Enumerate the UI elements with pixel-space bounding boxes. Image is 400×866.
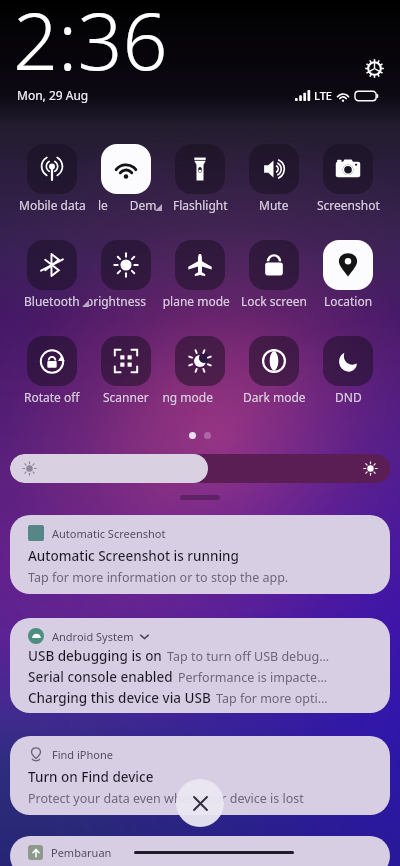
button[interactable]: Find iPhone	[10, 736, 390, 815]
staticText: Dark mode	[243, 389, 306, 405]
staticText: Mobile data	[19, 197, 86, 213]
staticText: Auto brightness	[89, 293, 147, 309]
button[interactable]: Bluetooth	[15, 240, 89, 312]
staticText: Rotate off	[24, 389, 80, 405]
staticText: Bluetooth	[24, 293, 80, 309]
button[interactable]: Reading mode	[163, 336, 237, 408]
staticText: Android System	[52, 629, 134, 644]
button[interactable]: Mute	[237, 144, 311, 216]
staticText: Reading mode	[163, 389, 213, 405]
button[interactable]: Brightness	[10, 454, 390, 483]
staticText: Serial console enabled	[28, 668, 173, 686]
staticText: Tap to turn off USB debug…	[167, 648, 330, 665]
button[interactable]: Settings	[360, 54, 388, 82]
staticText: Airplane mode	[163, 293, 230, 309]
staticText: LTE	[314, 88, 332, 103]
button[interactable]: Lock screen	[237, 240, 311, 312]
button[interactable]: Rotate off	[15, 336, 89, 408]
button[interactable]: Automatic Screenshot	[10, 515, 390, 594]
staticText: Tap for more opti…	[216, 690, 328, 707]
button[interactable]: Mobile data	[15, 144, 89, 216]
staticText: Charging this device via USB	[28, 689, 211, 707]
button[interactable]: Auto brightness	[89, 240, 163, 312]
staticText: Mon, 29 Aug	[17, 87, 89, 103]
staticText: Flashlight	[173, 197, 228, 213]
button[interactable]: Android System	[10, 618, 390, 713]
staticText: Tap for more information or to stop the …	[28, 569, 289, 586]
button[interactable]: Airplane mode	[163, 240, 237, 312]
staticText: DND	[335, 389, 362, 405]
button[interactable]: Pembaruan	[10, 836, 390, 866]
button[interactable]: Flashlight	[163, 144, 237, 216]
button[interactable]: Dark mode	[237, 336, 311, 408]
staticText: Scanner	[103, 389, 149, 405]
staticText: Location	[324, 293, 373, 309]
staticText: Automatic Screenshot	[52, 526, 166, 541]
staticText: le Dem	[98, 197, 157, 213]
staticText: Automatic Screenshot is running	[28, 547, 239, 565]
button[interactable]: Screenshot	[311, 144, 385, 216]
staticText: Performance is impacte…	[178, 669, 328, 686]
staticText: Find iPhone	[52, 747, 113, 762]
button[interactable]: Clear all notifications	[176, 779, 224, 827]
staticText: Lock screen	[241, 293, 308, 309]
staticText: Pembaruan	[51, 845, 112, 860]
staticText: Screenshot	[317, 197, 380, 213]
staticText: USB debugging is on	[28, 647, 162, 665]
staticText: Protect your data even when your device …	[28, 790, 304, 807]
button[interactable]: Scanner	[89, 336, 163, 408]
button[interactable]: le Dem	[89, 144, 163, 216]
button[interactable]: DND	[311, 336, 385, 408]
staticText: Mute	[259, 197, 289, 213]
staticText: Turn on Find device	[28, 768, 154, 786]
button[interactable]: Location	[311, 240, 385, 312]
staticText: 2:36	[13, 0, 168, 94]
